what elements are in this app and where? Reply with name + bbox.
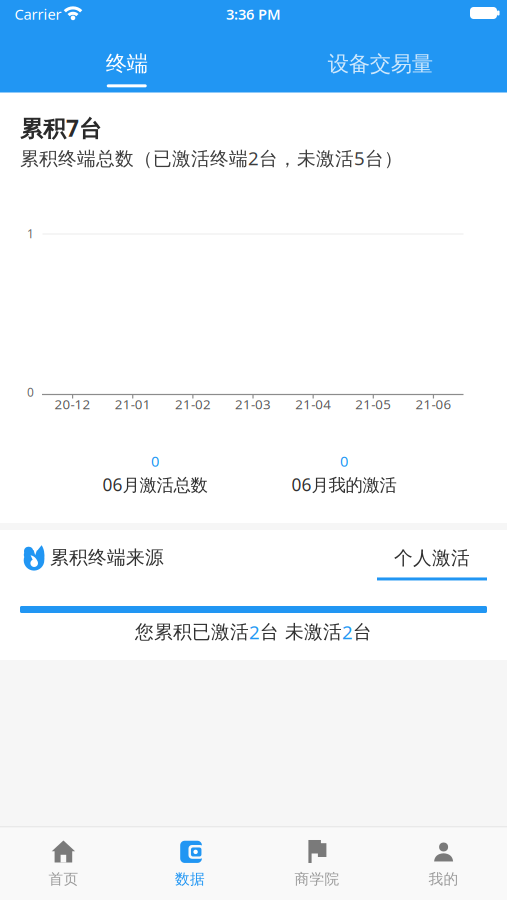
staticText: 21-03 bbox=[235, 395, 271, 413]
staticText: Carrier bbox=[14, 4, 61, 24]
staticText: 个人激活 bbox=[394, 546, 470, 569]
staticText: 0 bbox=[340, 451, 348, 471]
button[interactable]: 数据 bbox=[127, 830, 253, 898]
staticText: 台 bbox=[353, 620, 372, 643]
button[interactable]: 首页 bbox=[0, 830, 126, 898]
staticText: 06月激活总数 bbox=[102, 473, 207, 496]
staticText: 21-04 bbox=[295, 395, 331, 413]
staticText: 累积终端来源 bbox=[50, 546, 164, 569]
staticText: 2 bbox=[249, 620, 260, 644]
staticText: 06月我的激活 bbox=[291, 473, 396, 496]
staticText: 累积7台 bbox=[20, 113, 102, 143]
staticText: 首页 bbox=[48, 870, 78, 888]
staticText: 2 bbox=[342, 620, 353, 644]
button[interactable]: 我的 bbox=[381, 830, 507, 898]
staticText: 累积终端总数（已激活终端2台，未激活5台） bbox=[20, 146, 403, 170]
staticText: 0 bbox=[27, 384, 34, 400]
staticText: 1 bbox=[27, 225, 34, 241]
staticText: 21-05 bbox=[355, 395, 391, 413]
staticText: 数据 bbox=[175, 870, 205, 888]
staticText: 0 bbox=[151, 451, 159, 471]
staticText: 您累积已激活 bbox=[135, 620, 249, 643]
staticText: 我的 bbox=[429, 870, 459, 888]
staticText: 20-12 bbox=[55, 395, 91, 413]
button[interactable]: 商学院 bbox=[254, 830, 380, 898]
staticText: 21-01 bbox=[115, 395, 151, 413]
staticText: 终端 bbox=[106, 51, 148, 77]
button[interactable]: 设备交易量 bbox=[253, 36, 507, 92]
staticText: 商学院 bbox=[294, 870, 339, 888]
staticText: 设备交易量 bbox=[328, 51, 433, 77]
staticText: 3:36 PM bbox=[226, 4, 281, 24]
button[interactable]: 个人激活 bbox=[377, 546, 487, 580]
staticText: 21-06 bbox=[415, 395, 451, 413]
button[interactable]: 终端 bbox=[0, 41, 253, 97]
staticText: 21-02 bbox=[175, 395, 211, 413]
staticText: 台 未激活 bbox=[260, 620, 342, 643]
